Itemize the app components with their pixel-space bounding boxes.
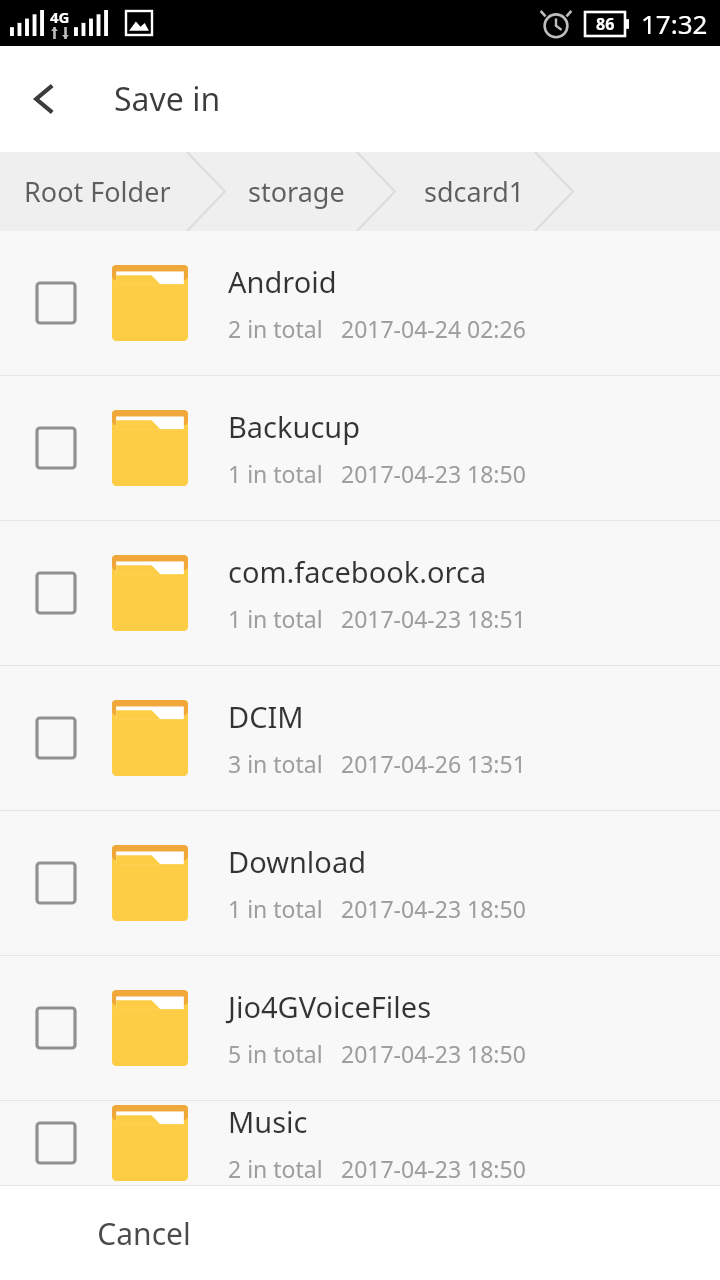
staticText: 17:32 <box>641 6 708 41</box>
staticText: 2017-04-24 02:26 <box>341 313 526 344</box>
button[interactable]: storage <box>248 173 345 210</box>
staticText: sdcard1 <box>424 173 525 210</box>
staticText: DCIM <box>228 697 304 736</box>
button[interactable]: Select Backucup <box>0 376 112 520</box>
staticText: Backucup <box>228 407 361 446</box>
button[interactable]: Select Backucup <box>0 376 720 521</box>
staticText: 86 <box>596 13 615 35</box>
button[interactable]: Select Jio4GVoiceFiles <box>0 956 112 1100</box>
staticText: Save in <box>114 77 221 121</box>
button[interactable]: sdcard1 <box>424 173 525 210</box>
staticText: 2017-04-23 18:50 <box>341 458 526 489</box>
staticText: 4G <box>50 7 70 27</box>
staticText: Jio4GVoiceFiles <box>228 987 432 1026</box>
staticText: 5 in total <box>228 1038 323 1069</box>
button[interactable]: Select Android <box>0 231 112 375</box>
staticText: 1 in total <box>228 893 323 924</box>
staticText: com.facebook.orca <box>228 552 487 591</box>
staticText: Download <box>228 842 366 881</box>
staticText: 3 in total <box>228 748 323 779</box>
staticText: 2017-04-23 18:50 <box>341 893 526 924</box>
button[interactable]: Select DCIM <box>0 666 720 811</box>
button[interactable]: Cancel <box>0 1186 360 1280</box>
button[interactable]: Back <box>0 55 88 143</box>
button[interactable]: Select Music <box>0 1101 112 1185</box>
staticText: 2017-04-26 13:51 <box>341 748 526 779</box>
button[interactable]: Select com.facebook.orca <box>0 521 720 666</box>
staticText: 2017-04-23 18:50 <box>341 1038 526 1069</box>
staticText: Music <box>228 1102 308 1141</box>
staticText: Root Folder <box>24 173 171 210</box>
button[interactable]: Select DCIM <box>0 666 112 810</box>
staticText: 1 in total <box>228 458 323 489</box>
staticText: Android <box>228 262 337 301</box>
button[interactable]: Select Download <box>0 811 720 956</box>
staticText: 2 in total <box>228 1153 323 1184</box>
button[interactable]: Select Android <box>0 231 720 376</box>
button[interactable]: Select Download <box>0 811 112 955</box>
button[interactable]: Select Music <box>0 1101 720 1185</box>
staticText: 2017-04-23 18:50 <box>341 1153 526 1184</box>
staticText: 2 in total <box>228 313 323 344</box>
staticText: 1 in total <box>228 603 323 634</box>
button[interactable]: Root Folder <box>24 173 171 210</box>
button[interactable]: Select com.facebook.orca <box>0 521 112 665</box>
staticText: 2017-04-23 18:51 <box>341 603 526 634</box>
staticText: Cancel <box>97 1213 191 1254</box>
staticText: storage <box>248 173 345 210</box>
button[interactable]: Select Jio4GVoiceFiles <box>0 956 720 1101</box>
